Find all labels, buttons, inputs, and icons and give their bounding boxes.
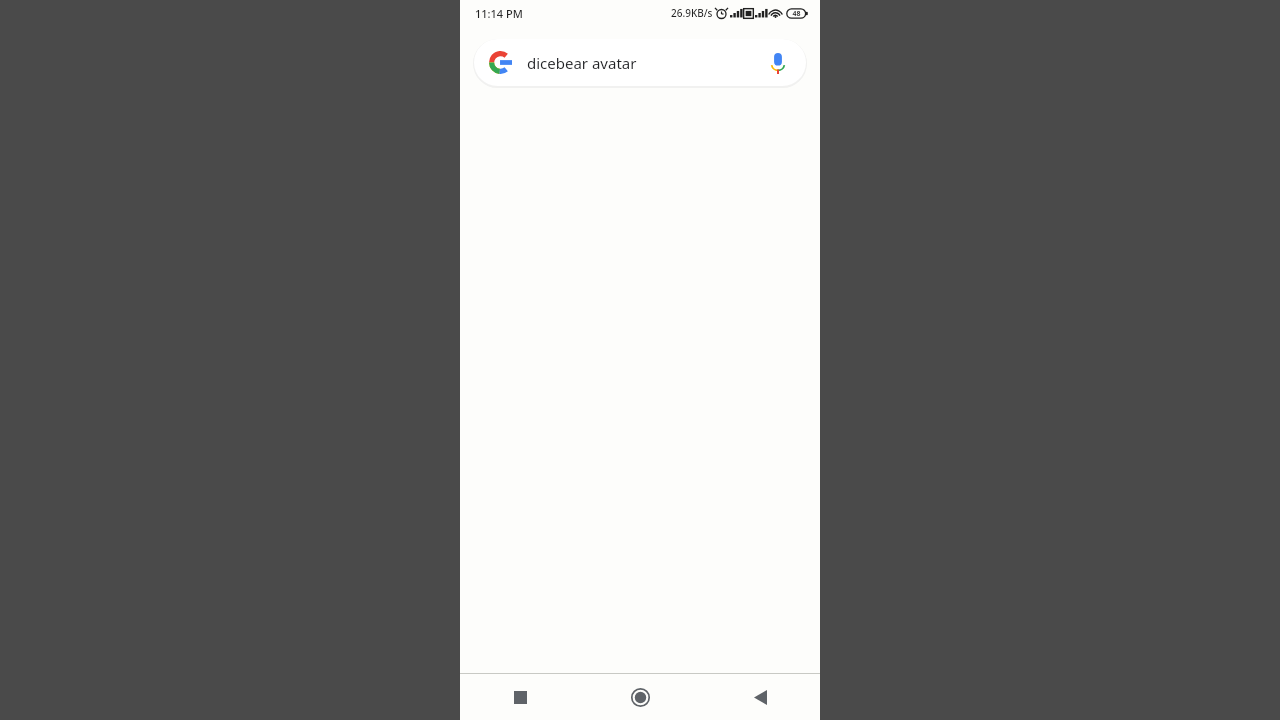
staticText: 48 bbox=[792, 9, 801, 19]
button[interactable]: Home bbox=[580, 674, 700, 720]
staticText: 11:14 PM bbox=[475, 6, 523, 21]
staticText: 26.9KB/s bbox=[671, 6, 713, 20]
button[interactable]: Voice search bbox=[765, 50, 791, 76]
staticText: dicebear avatar bbox=[527, 53, 765, 73]
button[interactable]: Recents bbox=[460, 674, 580, 720]
button[interactable]: Back bbox=[700, 674, 820, 720]
button[interactable]: dicebear avatar bbox=[474, 39, 806, 86]
